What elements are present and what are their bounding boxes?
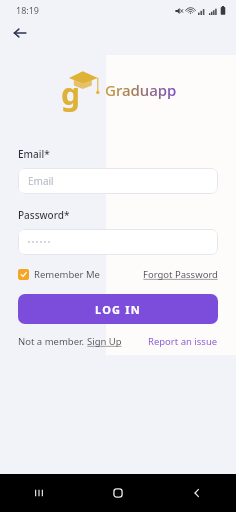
staticText: Report an issue [148,335,218,348]
staticText: g [61,73,80,114]
button[interactable]: Sign Up [87,335,122,348]
button[interactable]: Remember Me [18,268,102,281]
staticText: Sign Up [87,335,122,348]
staticText: Graduapp [105,80,177,100]
button[interactable]: Recent apps [0,474,78,512]
staticText: Remember Me [34,268,100,281]
staticText: Not a member. [18,335,84,348]
button[interactable]: Forgot Password [143,268,218,281]
button[interactable]: Report an issue [148,335,218,348]
staticText: Password* [18,208,70,222]
staticText: Forgot Password [143,268,218,281]
button[interactable]: Home [78,474,157,512]
button[interactable]: LOG IN [18,294,218,324]
button[interactable]: Back [157,474,236,512]
staticText: LOG IN [95,302,141,317]
staticText: Email* [18,147,50,161]
staticText: 18:19 [16,4,40,16]
button[interactable] [18,229,218,255]
staticText: Email [28,174,54,188]
button[interactable]: Back [8,21,32,45]
button[interactable]: Email [18,168,218,194]
